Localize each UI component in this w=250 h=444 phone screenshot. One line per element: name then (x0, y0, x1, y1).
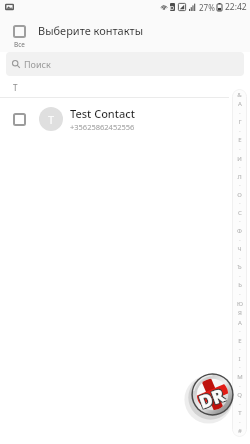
staticText: Все (14, 40, 25, 48)
staticText: Ф (237, 227, 242, 235)
staticText: Е (238, 136, 242, 144)
staticText: Q (237, 391, 242, 399)
staticText: DR (197, 383, 230, 415)
staticText: · (239, 273, 241, 280)
staticText: · (239, 128, 241, 135)
staticText: · (239, 291, 241, 298)
staticText: A (238, 319, 242, 327)
staticText: · (239, 383, 241, 390)
staticText: · (239, 146, 241, 153)
staticText: А (238, 100, 242, 108)
button[interactable]: Alphabet index (232, 89, 247, 437)
staticText: DR (194, 382, 227, 414)
staticText: T (13, 82, 18, 93)
staticText: DR (195, 384, 228, 416)
staticText: Выберите контакты (38, 23, 144, 38)
staticText: · (239, 401, 241, 408)
staticText: D (170, 4, 175, 11)
staticText: +35625862452556 (70, 122, 135, 132)
staticText: 27% (199, 2, 215, 13)
staticText: Я (238, 309, 242, 317)
staticText: # (238, 427, 242, 435)
staticText: · (239, 237, 241, 244)
staticText: & (237, 91, 242, 99)
staticText: Ь (238, 281, 242, 289)
staticText: I (238, 355, 241, 363)
staticText: · (239, 255, 241, 262)
staticText: Г (238, 118, 242, 126)
staticText: Л (237, 173, 242, 181)
staticText: T (238, 409, 242, 417)
staticText: Поиск (24, 58, 51, 70)
staticText: О (237, 191, 242, 199)
staticText: С (238, 209, 242, 217)
staticText: · (239, 346, 241, 353)
staticText: · (239, 200, 241, 207)
staticText: И (237, 155, 242, 163)
staticText: · (239, 328, 241, 335)
button[interactable]: T (0, 100, 250, 138)
staticText: · (239, 164, 241, 171)
staticText: T (48, 112, 55, 127)
staticText: Ч (237, 245, 242, 253)
staticText: M (237, 373, 243, 381)
staticText: Ъ (237, 263, 242, 271)
staticText: E (238, 337, 242, 345)
staticText: · (239, 110, 241, 117)
staticText: 22:42 (225, 1, 247, 13)
button[interactable]: Select all contacts (4, 20, 35, 48)
staticText: · (239, 218, 241, 225)
staticText: DR (195, 382, 228, 415)
staticText: · (239, 419, 241, 426)
staticText: · (239, 364, 241, 371)
staticText: DR (196, 381, 229, 413)
button[interactable]: DR badge button (190, 372, 235, 417)
staticText: · (239, 182, 241, 189)
staticText: Test Contact (70, 106, 135, 121)
staticText: Ю (237, 300, 243, 308)
button[interactable]: Поиск (6, 52, 244, 76)
